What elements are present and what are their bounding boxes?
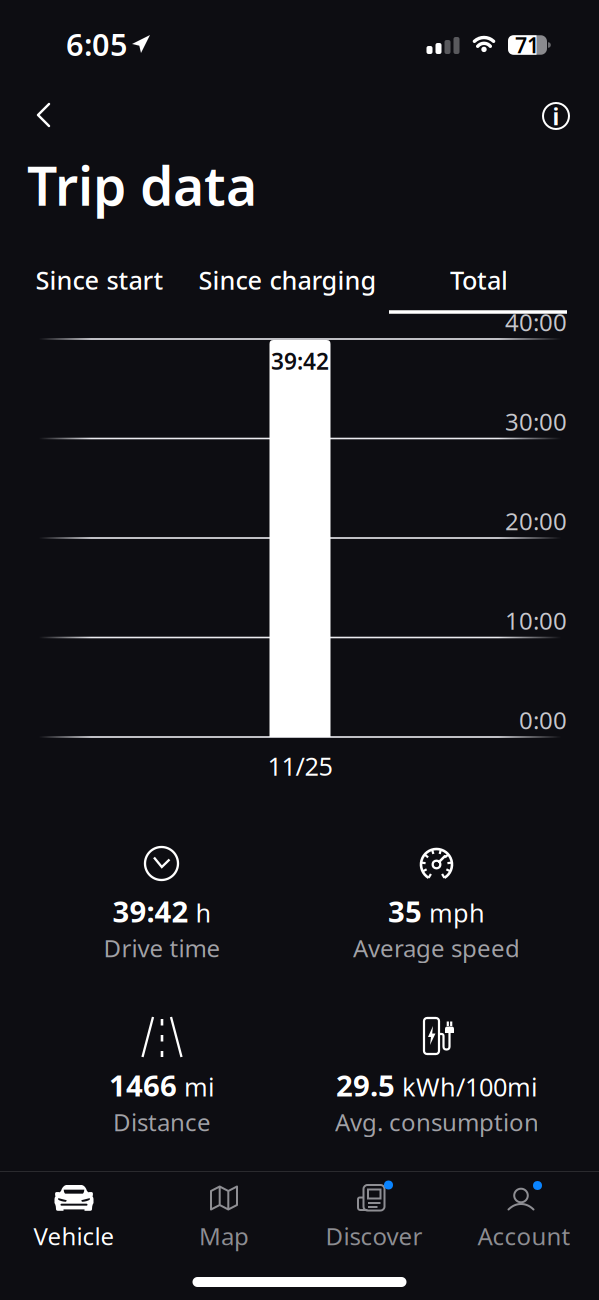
button[interactable]: Account xyxy=(449,1169,598,1261)
staticText: 1466 xyxy=(109,1065,177,1104)
staticText: h xyxy=(195,896,211,929)
staticText: 39:42 xyxy=(112,891,188,930)
staticText: 40:00 xyxy=(505,306,567,338)
staticText: i xyxy=(552,101,559,131)
staticText: 0:00 xyxy=(519,704,567,736)
staticText: 29.5 xyxy=(336,1065,395,1104)
staticText: Vehicle xyxy=(33,1220,114,1252)
staticText: mph xyxy=(429,896,485,929)
staticText: Avg. consumption xyxy=(335,1106,539,1138)
staticText: Since start xyxy=(35,263,163,297)
staticText: Distance xyxy=(113,1106,211,1138)
staticText: 30:00 xyxy=(505,406,567,437)
staticText: Discover xyxy=(325,1220,422,1252)
staticText: 71 xyxy=(515,31,539,59)
staticText: Average speed xyxy=(353,932,520,964)
staticText: 20:00 xyxy=(505,505,567,537)
staticText: Total xyxy=(450,263,508,297)
staticText: 10:00 xyxy=(505,605,567,636)
staticText: Since charging xyxy=(198,263,376,297)
staticText: 35 xyxy=(388,891,422,930)
staticText: Trip data xyxy=(27,150,257,220)
button[interactable]: Info xyxy=(534,94,578,138)
staticText: mi xyxy=(184,1070,215,1103)
button[interactable]: Back xyxy=(22,93,66,137)
staticText: 6:05 xyxy=(66,24,128,64)
button[interactable]: Since start xyxy=(9,255,189,305)
button[interactable]: Since charging xyxy=(172,255,402,305)
staticText: 11/25 xyxy=(267,749,332,783)
staticText: Account xyxy=(477,1220,570,1252)
staticText: Map xyxy=(199,1220,249,1252)
staticText: kWh/100mi xyxy=(402,1070,538,1103)
button[interactable]: Vehicle xyxy=(0,1169,148,1261)
staticText: Drive time xyxy=(103,932,220,964)
button[interactable]: Total xyxy=(389,255,569,305)
button[interactable]: Discover xyxy=(299,1169,448,1261)
button[interactable]: Map xyxy=(149,1169,298,1261)
staticText: 39:42 xyxy=(271,346,329,376)
